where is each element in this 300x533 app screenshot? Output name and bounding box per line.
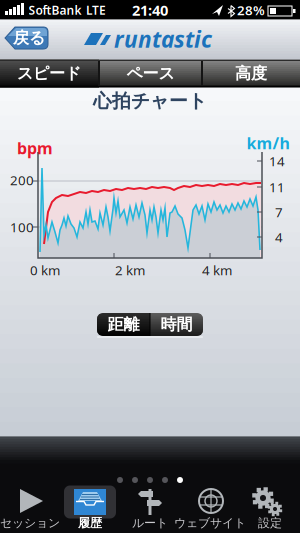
staticText: 200	[10, 171, 34, 189]
staticText: スピード	[17, 64, 81, 83]
staticText: 高度	[235, 64, 267, 83]
staticText: 心拍チャート	[93, 89, 207, 112]
staticText: runtastic	[114, 24, 212, 54]
staticText: 14	[269, 152, 285, 170]
staticText: 100	[10, 218, 34, 236]
button[interactable]: 履歴	[60, 487, 120, 533]
staticText: 4	[275, 228, 283, 246]
staticText: ルート	[132, 516, 168, 530]
button[interactable]: ルート	[120, 487, 180, 533]
staticText: 4 km	[202, 261, 232, 279]
staticText: bpm	[17, 137, 53, 159]
staticText: 戻る	[13, 28, 45, 48]
staticText: LTE	[86, 2, 106, 18]
button[interactable]: ペース	[100, 60, 200, 86]
staticText: 7	[275, 203, 283, 221]
staticText: SoftBank	[28, 2, 81, 18]
staticText: 21:40	[132, 0, 168, 20]
staticText: 0 km	[30, 261, 60, 279]
button[interactable]: ウェブサイト	[180, 487, 240, 533]
staticText: 時間	[160, 315, 192, 334]
staticText: 11	[269, 178, 285, 196]
staticText: 距離	[107, 315, 139, 334]
button[interactable]: 時間	[150, 313, 203, 336]
button[interactable]: スピード	[0, 60, 98, 86]
button[interactable]: セッション	[0, 487, 60, 533]
staticText: 履歴	[78, 516, 102, 530]
staticText: セッション	[0, 516, 60, 530]
staticText: ペース	[126, 64, 174, 83]
staticText: ウェブサイト	[174, 516, 246, 530]
button[interactable]: 距離	[97, 313, 150, 336]
staticText: 28%	[237, 1, 265, 19]
button[interactable]: 高度	[203, 60, 299, 86]
staticText: km/h	[246, 132, 289, 154]
staticText: 2 km	[115, 261, 145, 279]
button[interactable]: 戻る	[0, 0, 300, 533]
staticText: 設定	[258, 516, 282, 530]
button[interactable]: 設定	[240, 487, 300, 533]
